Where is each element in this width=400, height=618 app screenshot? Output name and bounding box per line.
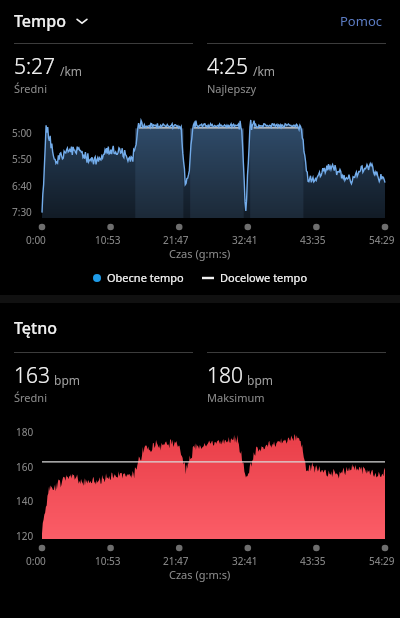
other: Zmień wykres [75,14,89,28]
button[interactable]: Tempo [14,10,89,32]
staticText: Pomoc [340,12,382,30]
staticText: /km [60,63,83,79]
staticText: Tętno [14,317,57,339]
staticText: Obecne tempo [107,270,184,285]
staticText: Najlepszy [207,81,257,96]
staticText: 54:29 [369,554,395,568]
staticText: 163 [14,361,50,390]
staticText: 140 [16,494,34,508]
button[interactable]: Pomoc [336,8,386,34]
staticText: 120 [16,529,34,543]
staticText: 5:50 [12,152,32,166]
staticText: 4:25 [207,52,249,81]
staticText: 54:29 [369,233,395,247]
staticText: Czas (g:m:s) [169,567,231,582]
staticText: 0:00 [26,554,46,568]
staticText: Średni [14,390,47,405]
staticText: 10:53 [95,233,121,247]
staticText: 10:53 [95,554,121,568]
staticText: bpm [54,372,80,388]
staticText: 180 [207,361,243,390]
staticText: 43:35 [300,554,326,568]
staticText: 32:41 [232,554,258,568]
staticText: 0:00 [26,233,46,247]
staticText: bpm [247,372,273,388]
staticText: Czas (g:m:s) [169,246,231,261]
staticText: 21:47 [163,233,189,247]
staticText: 5:00 [12,126,32,140]
staticText: 160 [16,460,34,474]
staticText: 180 [16,425,34,439]
staticText: Maksimum [207,390,265,405]
staticText: 7:30 [12,205,32,219]
staticText: 5:27 [14,52,56,81]
staticText: 21:47 [163,554,189,568]
staticText: /km [253,63,276,79]
staticText: Docelowe tempo [220,270,308,285]
staticText: 6:40 [12,179,32,193]
staticText: 32:41 [232,233,258,247]
staticText: 43:35 [300,233,326,247]
staticText: Średni [14,81,47,96]
staticText: Tempo [14,10,66,32]
